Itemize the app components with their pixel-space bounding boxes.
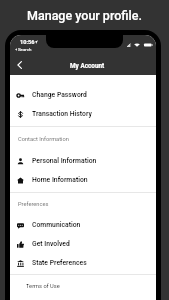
- button[interactable]: Home Information: [10, 171, 156, 189]
- staticText: Communication: [32, 221, 81, 229]
- staticText: Manage your profile.: [27, 8, 142, 23]
- staticText: Personal Information: [32, 157, 97, 165]
- staticText: 10:56: [20, 39, 35, 46]
- button[interactable]: Communication: [10, 216, 156, 234]
- button[interactable]: State Preferences: [10, 254, 156, 272]
- button[interactable]: Personal Information: [10, 152, 156, 170]
- button[interactable]: Transaction History: [10, 105, 156, 123]
- staticText: Transaction History: [32, 110, 92, 118]
- button[interactable]: Terms of Use: [10, 277, 156, 295]
- staticText: State Preferences: [32, 259, 87, 267]
- staticText: Terms of Use: [26, 283, 60, 290]
- button[interactable]: Get Involved: [10, 235, 156, 253]
- staticText: Search: [18, 47, 32, 52]
- staticText: Contact Information: [18, 136, 69, 143]
- staticText: Change Password: [32, 91, 87, 99]
- staticText: My Account: [70, 62, 105, 70]
- staticText: Get Involved: [32, 240, 70, 248]
- staticText: Home Information: [32, 176, 88, 184]
- button[interactable]: Back: [13, 58, 26, 71]
- staticText: Preferences: [18, 201, 49, 208]
- button[interactable]: Change Password: [10, 86, 156, 104]
